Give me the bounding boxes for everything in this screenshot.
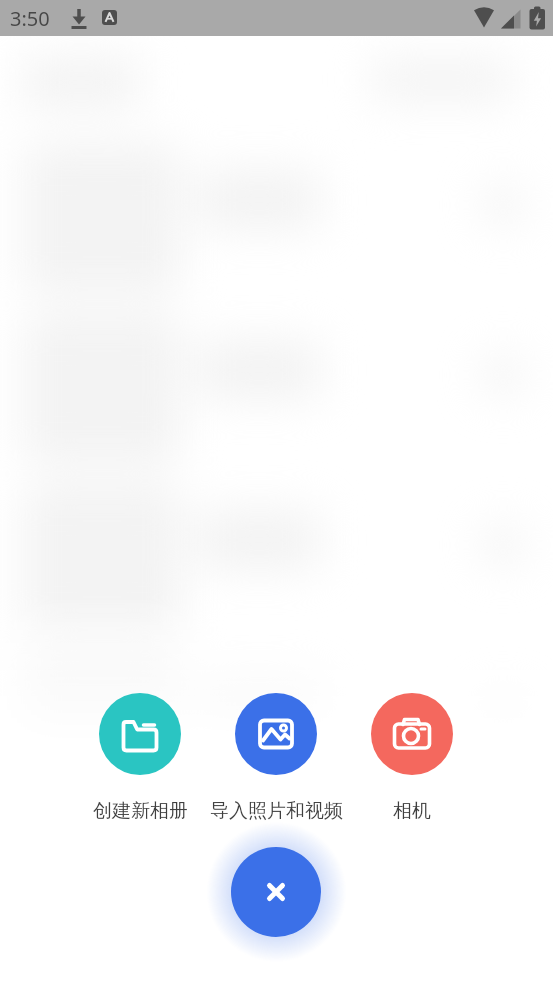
button[interactable] bbox=[235, 693, 317, 775]
button[interactable] bbox=[99, 693, 181, 775]
staticText: 相机 bbox=[393, 799, 431, 823]
staticText: 导入照片和视频 bbox=[210, 799, 343, 823]
staticText: 创建新相册 bbox=[93, 799, 188, 823]
staticText: 3:50 bbox=[10, 5, 50, 32]
button[interactable] bbox=[371, 693, 453, 775]
button[interactable] bbox=[231, 847, 321, 937]
